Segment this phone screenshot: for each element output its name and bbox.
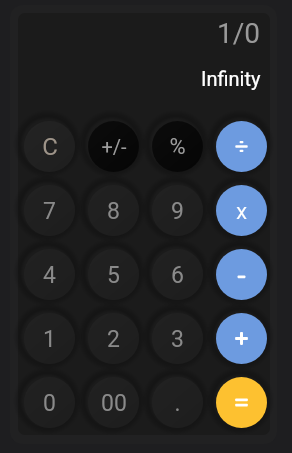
button[interactable]: 4 [24, 249, 75, 300]
staticText: +/- [101, 135, 127, 158]
button[interactable]: 3 [152, 313, 203, 364]
button[interactable]: 6 [152, 249, 203, 300]
staticText: 1/0 [217, 17, 261, 50]
button[interactable]: Divide [216, 121, 267, 172]
button[interactable]: 7 [24, 185, 75, 236]
staticText: % [169, 134, 186, 160]
button[interactable]: X [216, 185, 267, 236]
button[interactable]: Equals [216, 377, 267, 428]
staticText: 9 [171, 198, 184, 225]
button[interactable]: Plus [216, 313, 267, 364]
staticText: 3 [171, 326, 184, 353]
button[interactable]: 0 [24, 377, 75, 428]
staticText: Infinity [201, 67, 261, 90]
button[interactable]: . [152, 377, 203, 428]
button[interactable]: +/- [88, 121, 139, 172]
staticText: 8 [107, 198, 120, 225]
button[interactable]: 2 [88, 313, 139, 364]
staticText: . [174, 390, 181, 417]
staticText: 1 [43, 326, 56, 353]
button[interactable]: % [152, 121, 203, 172]
button[interactable]: 00 [88, 377, 139, 428]
staticText: X [236, 203, 247, 223]
staticText: C [42, 133, 58, 161]
staticText: 0 [43, 390, 56, 417]
button[interactable]: C [24, 121, 75, 172]
button[interactable]: 8 [88, 185, 139, 236]
staticText: 00 [101, 390, 127, 417]
staticText: 6 [171, 262, 184, 289]
button[interactable]: 5 [88, 249, 139, 300]
staticText: 2 [107, 326, 120, 353]
staticText: 5 [107, 262, 120, 289]
button[interactable]: 9 [152, 185, 203, 236]
staticText: 4 [43, 262, 56, 289]
button[interactable]: 1 [24, 313, 75, 364]
button[interactable]: Minus [216, 249, 267, 300]
staticText: 7 [43, 198, 56, 225]
